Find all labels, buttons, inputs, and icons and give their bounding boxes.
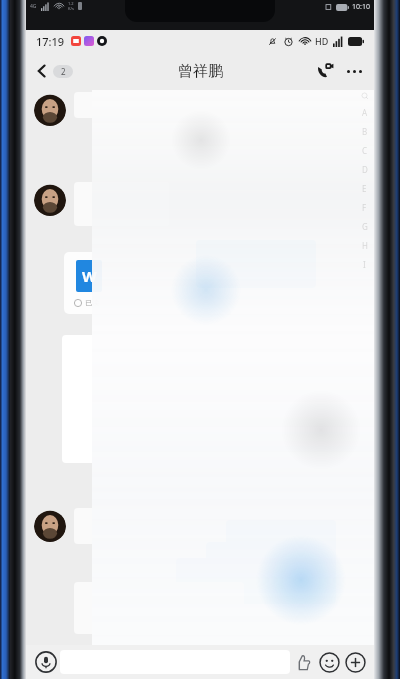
button[interactable] — [206, 542, 336, 582]
staticText: H — [362, 240, 368, 251]
staticText: 曾祥鹏 — [178, 62, 223, 81]
button[interactable]: Contact avatar — [34, 94, 66, 126]
staticText: 1.2 — [68, 1, 74, 6]
button[interactable]: More options — [340, 57, 368, 85]
button[interactable]: Contact avatar — [34, 184, 66, 216]
staticText: A — [362, 107, 368, 118]
button[interactable]: Video call — [310, 56, 340, 86]
button[interactable]: W — [64, 252, 179, 314]
staticText: G — [362, 221, 368, 232]
staticText: E — [362, 183, 367, 194]
button[interactable]: Contact avatar — [34, 510, 66, 542]
button[interactable] — [176, 558, 336, 604]
button[interactable] — [226, 520, 336, 554]
button[interactable]: Back, 2 unread — [26, 59, 81, 83]
staticText: W — [82, 266, 97, 286]
staticText: B — [362, 126, 368, 137]
staticText: HD — [315, 35, 329, 47]
button[interactable]: Emoji — [316, 649, 342, 675]
staticText: 4G — [30, 3, 37, 10]
staticText: C — [362, 145, 368, 156]
button[interactable] — [196, 240, 316, 288]
staticText: I — [363, 259, 366, 270]
staticText: 已读 — [85, 298, 99, 307]
staticText: K/s — [68, 6, 74, 11]
staticText: D — [362, 164, 368, 175]
button[interactable]: Voice message — [32, 648, 60, 676]
staticText: 17:19 — [36, 34, 65, 49]
button[interactable]: Thumbs up — [290, 649, 316, 675]
staticText: 2 — [61, 66, 66, 77]
button[interactable]: More functions — [342, 649, 368, 675]
staticText: F — [362, 202, 367, 213]
staticText: 10:10 — [352, 2, 370, 12]
